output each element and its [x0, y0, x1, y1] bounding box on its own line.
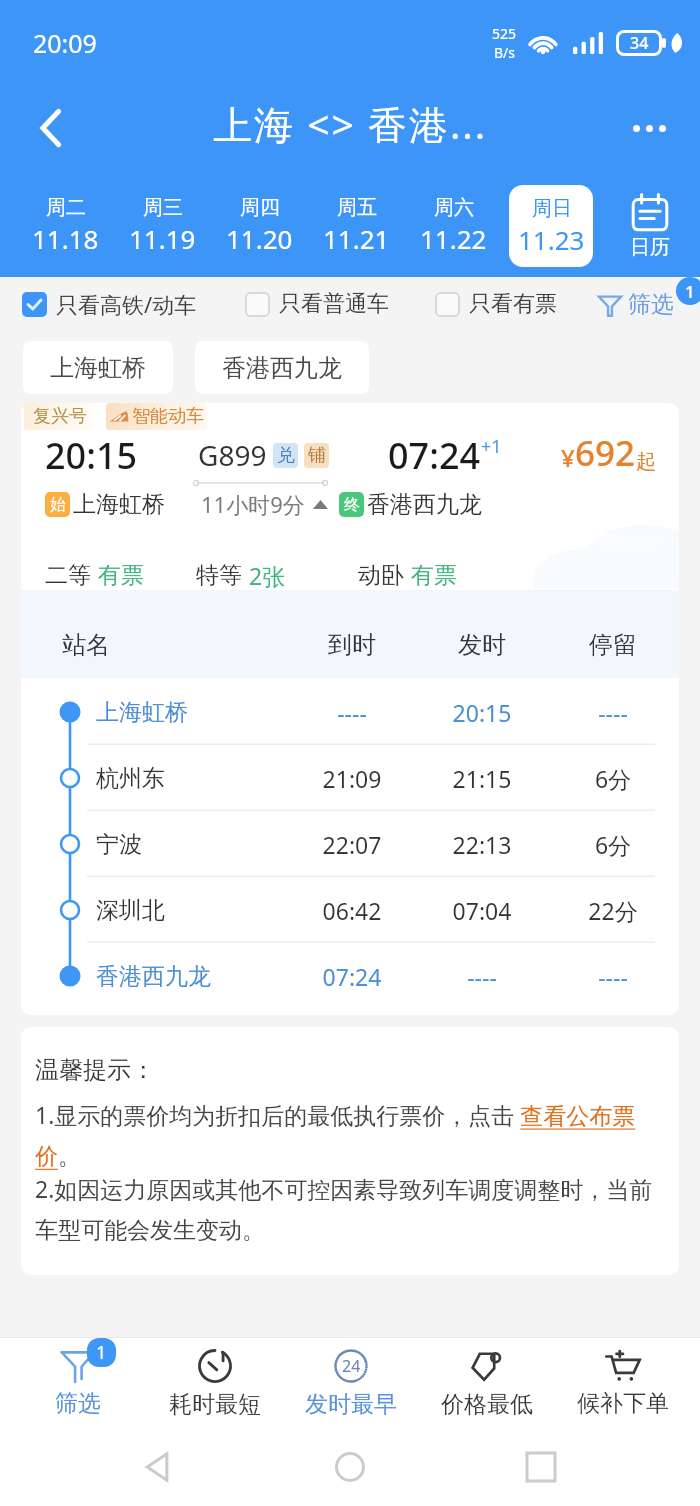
- button[interactable]: 日历: [599, 174, 700, 277]
- staticText: 20:15: [417, 697, 547, 728]
- staticText: 11.20: [226, 221, 293, 256]
- staticText: 筛选: [55, 1389, 101, 1418]
- staticText: 周二: [46, 195, 86, 220]
- button[interactable]: 1: [9, 1338, 146, 1428]
- staticText: 起: [636, 449, 656, 474]
- staticText: 终: [344, 495, 360, 515]
- staticText: 6分: [547, 763, 679, 794]
- button[interactable]: 24: [283, 1338, 419, 1428]
- button[interactable]: Recents: [509, 1435, 573, 1499]
- staticText: 11小时9分: [201, 489, 305, 519]
- staticText: 692: [575, 429, 636, 477]
- staticText: 站名: [62, 630, 287, 660]
- staticText: 有票: [98, 561, 144, 590]
- button[interactable]: 只看普通车: [245, 290, 389, 318]
- staticText: 21:09: [287, 763, 417, 794]
- staticText: 07:24: [287, 961, 417, 992]
- staticText: 二等: [45, 561, 91, 590]
- staticText: 兑: [277, 444, 295, 467]
- staticText: 宁波: [96, 830, 287, 859]
- button[interactable]: 只看有票: [435, 290, 557, 318]
- button[interactable]: 周四: [211, 174, 308, 277]
- staticText: ----: [547, 697, 679, 728]
- staticText: 香港西九龙: [96, 962, 287, 991]
- staticText: 1: [96, 1340, 107, 1365]
- button[interactable]: 价格最低: [419, 1338, 555, 1428]
- button[interactable]: 周六: [405, 174, 502, 277]
- button[interactable]: 周日: [502, 174, 599, 277]
- staticText: 智能动车: [132, 405, 204, 428]
- button[interactable]: 筛选: [598, 277, 682, 331]
- staticText: 22分: [547, 895, 679, 926]
- staticText: 07:24: [388, 431, 481, 480]
- button[interactable]: 耗时最短: [146, 1338, 283, 1428]
- staticText: 耗时最短: [169, 1390, 261, 1419]
- button[interactable]: 上海虹桥: [23, 341, 173, 394]
- staticText: 34: [630, 32, 649, 54]
- button[interactable]: More options: [618, 97, 680, 159]
- staticText: 特等: [196, 561, 242, 590]
- staticText: 11.22: [420, 221, 487, 256]
- staticText: 始: [50, 495, 66, 515]
- staticText: 周六: [434, 195, 474, 220]
- staticText: 2张: [249, 560, 286, 590]
- staticText: 发时最早: [305, 1390, 397, 1419]
- button[interactable]: 候补下单: [555, 1338, 691, 1428]
- staticText: 只看有票: [469, 290, 557, 318]
- button[interactable]: Back: [20, 97, 82, 159]
- staticText: 停留: [547, 630, 679, 660]
- staticText: 6分: [547, 829, 679, 860]
- staticText: 11.18: [32, 221, 99, 256]
- staticText: 筛选: [628, 290, 674, 319]
- staticText: ----: [417, 961, 547, 992]
- staticText: 杭州东: [96, 764, 287, 793]
- staticText: 香港西九龙: [367, 490, 482, 519]
- staticText: 07:04: [417, 895, 547, 926]
- staticText: ----: [287, 697, 417, 728]
- staticText: 候补下单: [577, 1389, 669, 1418]
- button[interactable]: Back: [127, 1435, 191, 1499]
- staticText: 24: [342, 1355, 361, 1377]
- staticText: 1: [685, 280, 695, 303]
- staticText: 21:15: [417, 763, 547, 794]
- staticText: 有票: [411, 561, 457, 590]
- button[interactable]: 周五: [308, 174, 405, 277]
- staticText: 动卧: [358, 561, 404, 590]
- staticText: 2.如因运力原因或其他不可控因素导致列车调度调整时，当前车型可能会发生变动。: [35, 1173, 669, 1245]
- staticText: 周三: [143, 195, 183, 220]
- button[interactable]: 只看高铁/动车: [22, 289, 197, 319]
- staticText: 深圳北: [96, 896, 287, 925]
- staticText: 周四: [240, 195, 280, 220]
- staticText: 只看高铁/动车: [56, 289, 197, 319]
- button[interactable]: 周二: [17, 174, 114, 277]
- button[interactable]: 香港西九龙: [195, 341, 369, 394]
- button[interactable]: 周三: [114, 174, 211, 277]
- staticText: 只看普通车: [279, 290, 389, 318]
- staticText: 11.23: [518, 222, 585, 257]
- button[interactable]: 复兴号: [21, 403, 679, 1015]
- staticText: 周五: [337, 195, 377, 220]
- staticText: 到时: [287, 630, 417, 660]
- staticText: 525: [492, 24, 517, 43]
- staticText: 铺: [308, 444, 326, 467]
- staticText: 20:09: [33, 26, 97, 60]
- staticText: 发时: [417, 630, 547, 660]
- staticText: 11.21: [323, 221, 390, 256]
- staticText: 上海虹桥: [96, 698, 287, 727]
- staticText: 11.19: [129, 221, 196, 256]
- staticText: 22:13: [417, 829, 547, 860]
- staticText: 香港西九龙: [222, 353, 342, 383]
- button[interactable]: Home: [318, 1435, 382, 1499]
- staticText: 06:42: [287, 895, 417, 926]
- staticText: B/s: [494, 43, 516, 62]
- staticText: 温馨提示：: [35, 1055, 155, 1085]
- staticText: G899: [198, 436, 267, 474]
- staticText: 周日: [532, 196, 572, 221]
- staticText: 20:15: [45, 431, 138, 480]
- staticText: 价格最低: [441, 1390, 533, 1419]
- staticText: ----: [547, 961, 679, 992]
- staticText: 日历: [630, 235, 670, 260]
- staticText: 上海虹桥: [73, 490, 165, 519]
- staticText: 上海虹桥: [50, 353, 146, 383]
- staticText: 复兴号: [33, 405, 87, 428]
